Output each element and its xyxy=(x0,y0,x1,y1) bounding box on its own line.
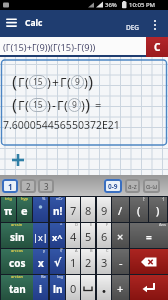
staticText: D xyxy=(75,222,78,227)
staticText: × xyxy=(117,229,124,244)
staticText: arccos xyxy=(11,248,23,253)
staticText: + xyxy=(52,74,59,90)
staticText: e xyxy=(21,203,28,218)
button[interactable]: Ans xyxy=(130,223,168,248)
staticText: Γ xyxy=(60,73,67,91)
staticText: F xyxy=(106,222,109,227)
staticText: cos xyxy=(9,256,26,270)
staticText: arctan xyxy=(11,274,23,279)
staticText: ) xyxy=(88,70,94,93)
button[interactable]: log xyxy=(50,275,65,300)
button[interactable]: - xyxy=(112,249,129,274)
staticText: - xyxy=(119,255,123,270)
staticText: |x| xyxy=(33,231,48,243)
button[interactable]: 9 xyxy=(97,197,111,222)
staticText: ( xyxy=(25,96,29,114)
button[interactable]: arcsin xyxy=(1,223,33,248)
button[interactable]: × xyxy=(112,223,129,248)
staticText: 7.600054456550372E21 xyxy=(3,118,120,132)
button[interactable]: nCr xyxy=(50,197,65,222)
button[interactable]: D xyxy=(66,223,80,248)
staticText: nCr xyxy=(56,196,63,201)
button[interactable]: E xyxy=(81,223,95,248)
button[interactable]: 8 xyxy=(81,197,95,222)
staticText: ( xyxy=(64,96,68,114)
button[interactable] xyxy=(10,152,26,168)
button[interactable]: |x| xyxy=(33,223,48,248)
button[interactable]: % xyxy=(33,197,48,222)
button[interactable]: A xyxy=(66,249,80,274)
button[interactable]: arccos xyxy=(1,249,33,274)
staticText: B xyxy=(90,248,93,253)
button[interactable] xyxy=(3,14,21,32)
button[interactable]: hyp xyxy=(17,197,32,222)
button[interactable]: 7 xyxy=(66,197,80,222)
button[interactable]: 3 xyxy=(38,179,54,193)
staticText: 0-9 xyxy=(108,182,118,191)
staticText: 36% xyxy=(105,1,117,9)
staticText: 9 xyxy=(72,99,77,111)
staticText: A xyxy=(75,248,78,253)
button[interactable]: 1 xyxy=(2,179,18,193)
button[interactable]: y xyxy=(33,249,48,274)
staticText: 15 xyxy=(33,76,43,88)
button[interactable]: ^ xyxy=(50,223,65,248)
button[interactable]: B xyxy=(81,249,95,274)
staticText: 3 xyxy=(44,181,49,192)
button[interactable] xyxy=(148,15,162,35)
staticText: ( xyxy=(67,73,71,91)
button[interactable]: 0 xyxy=(66,275,80,300)
staticText: 1 xyxy=(8,181,13,192)
staticText: x xyxy=(38,256,44,270)
button[interactable]: 0-9 xyxy=(104,179,122,193)
staticText: + xyxy=(117,281,124,296)
staticText: 1 xyxy=(70,255,77,270)
staticText: ( xyxy=(12,93,18,116)
button[interactable]: [· xyxy=(130,197,148,222)
staticText: ) xyxy=(81,96,85,114)
staticText: 3 xyxy=(101,255,108,270)
staticText: ·] xyxy=(162,196,165,201)
button[interactable]: Re xyxy=(33,275,48,300)
staticText: 6 xyxy=(101,229,108,244)
staticText: Γ xyxy=(57,96,64,114)
button[interactable]: arctan xyxy=(1,275,33,300)
button[interactable]: C xyxy=(97,249,111,274)
button[interactable] xyxy=(81,275,95,300)
button[interactable]: trig xyxy=(1,197,16,222)
button[interactable]: 2 xyxy=(20,179,36,193)
button[interactable]: ∛ xyxy=(50,249,65,274)
staticText: sin xyxy=(10,230,25,244)
button[interactable]: F xyxy=(97,223,111,248)
staticText: ) xyxy=(85,93,91,116)
button[interactable]: / xyxy=(112,197,129,222)
staticText: α-ω xyxy=(146,182,158,191)
staticText: 7 xyxy=(70,203,77,218)
button[interactable]: a-z xyxy=(125,179,140,193)
staticText: log xyxy=(57,274,63,279)
staticText: a-z xyxy=(128,182,137,191)
staticText: ) xyxy=(156,203,160,218)
button[interactable] xyxy=(130,249,168,274)
staticText: tan xyxy=(9,282,26,296)
staticText: hyp xyxy=(21,196,28,201)
staticText: Γ xyxy=(18,96,25,114)
staticText: - xyxy=(52,97,56,113)
button[interactable] xyxy=(97,275,111,300)
button[interactable]: α-ω xyxy=(143,179,160,193)
button[interactable] xyxy=(130,275,168,300)
staticText: π xyxy=(4,203,13,218)
button[interactable]: C xyxy=(146,37,168,57)
staticText: arcsin xyxy=(11,222,23,227)
button[interactable]: DEG xyxy=(120,19,146,35)
staticText: 8 xyxy=(85,203,92,218)
staticText: 4 xyxy=(70,229,77,244)
staticText: ln xyxy=(53,282,63,296)
button[interactable]: + xyxy=(112,275,129,300)
button[interactable]: ·] xyxy=(149,197,167,222)
staticText: n! xyxy=(53,204,63,218)
staticText: Re xyxy=(41,274,46,279)
staticText: C xyxy=(106,248,109,253)
staticText: [· xyxy=(143,196,146,201)
staticText: 9 xyxy=(75,76,80,88)
